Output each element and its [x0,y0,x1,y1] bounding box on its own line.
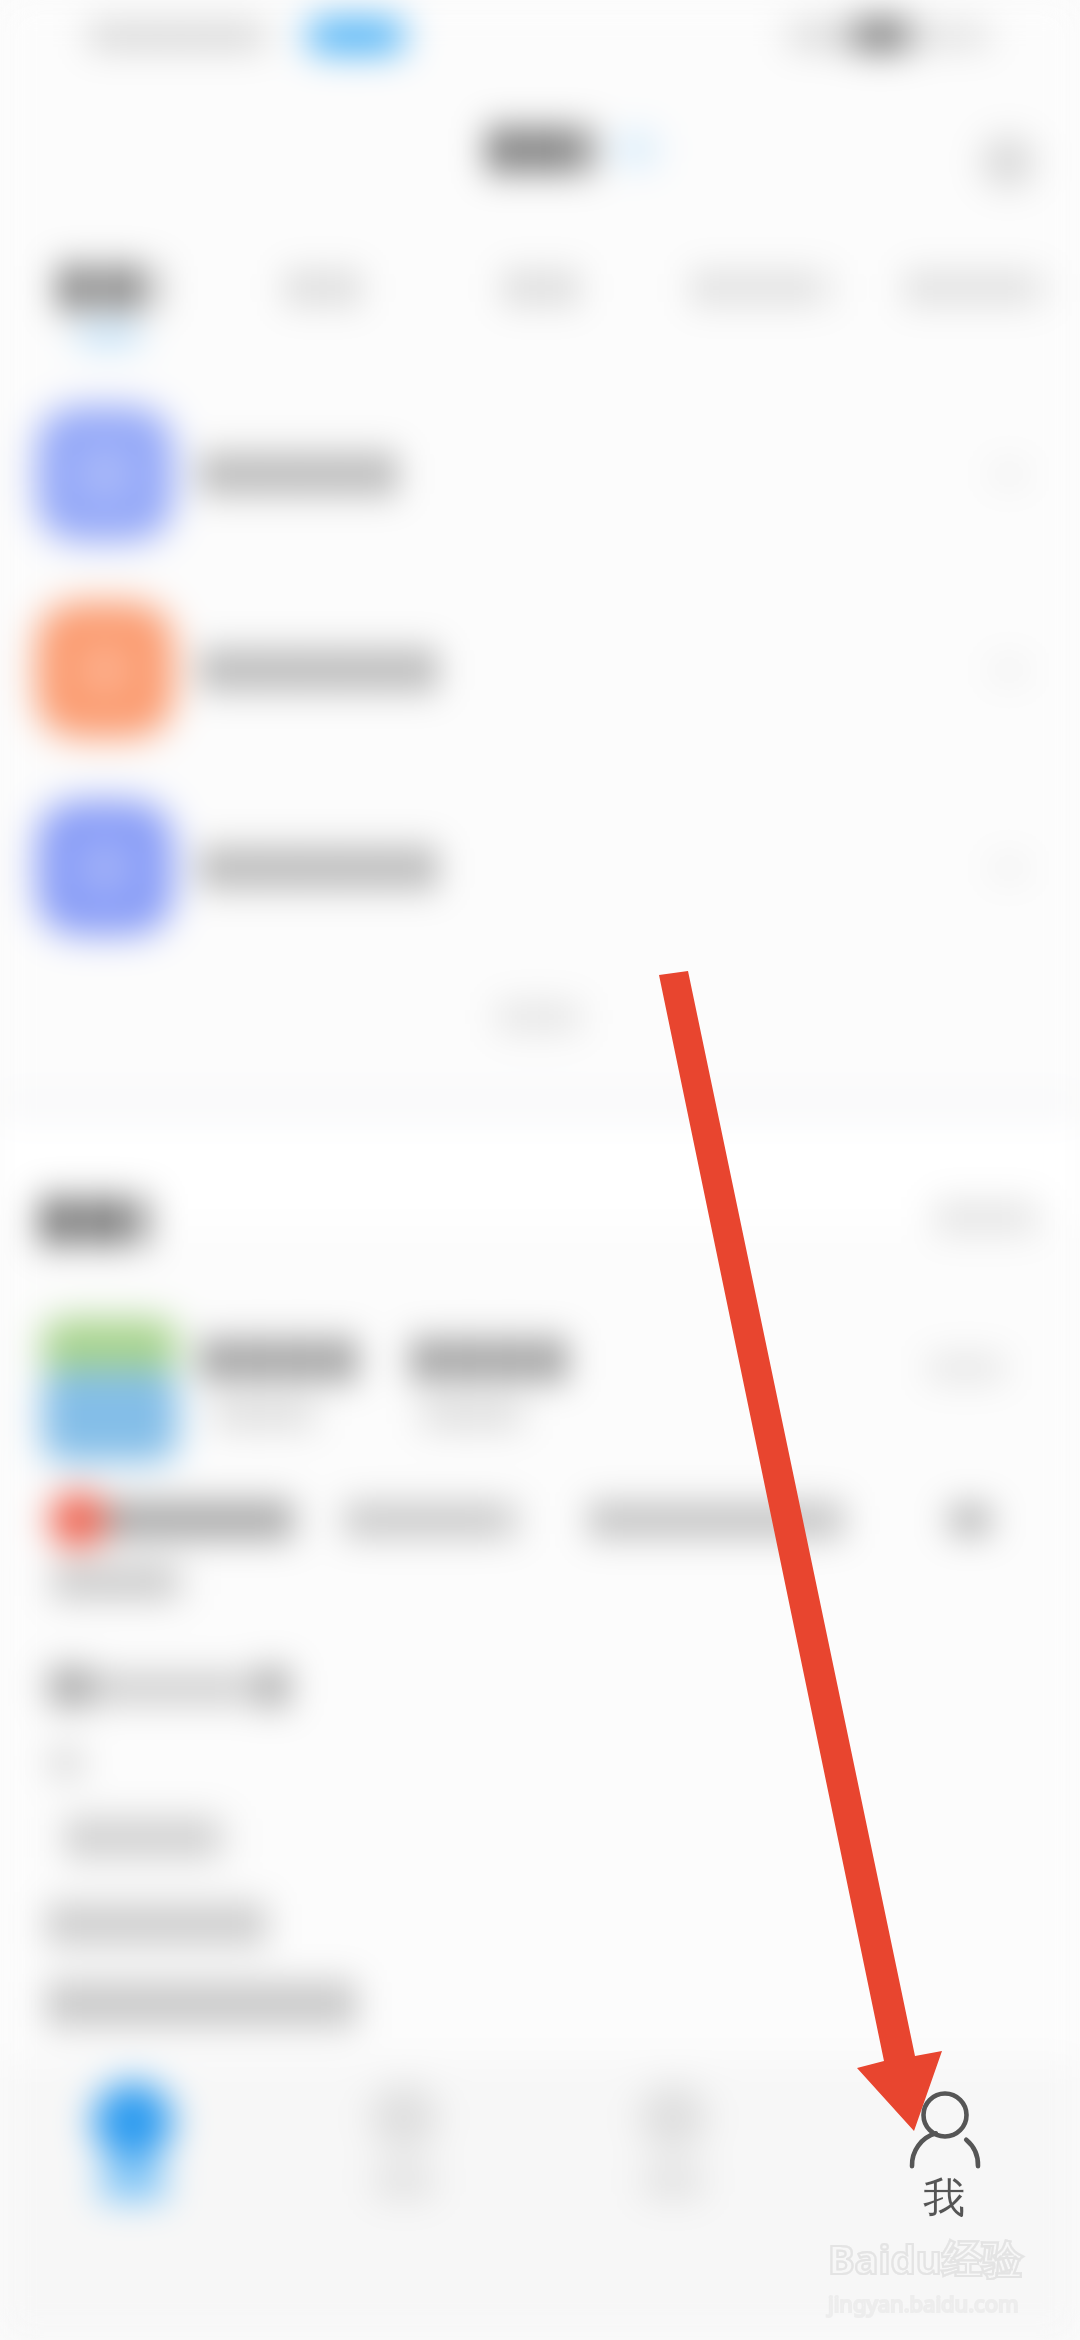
button[interactable]: 状态栏图标 [852,18,1032,80]
button[interactable]: 视频 [640,240,860,350]
button[interactable]: 热点 [440,240,620,350]
button[interactable]: 更多选项 [960,112,1060,212]
button[interactable]: 关注 [230,240,410,350]
button[interactable]: 资讯列表项 [20,1482,1060,1614]
button[interactable]: 全部 [900,1180,1060,1260]
button[interactable]: 消息 [540,2070,810,2230]
staticText: Baidu经验 [828,2231,1022,2286]
button[interactable]: 服务二 [20,603,1060,763]
staticText: 我 [923,2172,965,2225]
button[interactable]: 推荐 [20,240,200,350]
button[interactable]: 查看更多 [430,980,650,1056]
button[interactable]: 推荐卡片 [20,1288,1060,1480]
staticText: jingyan.baidu.com [828,2288,1019,2318]
button[interactable]: 我 [810,2070,1080,2230]
button[interactable]: 首页 [0,2070,270,2230]
button[interactable]: 服务三 [20,800,1060,960]
button[interactable]: 服务一 [20,406,1060,566]
button[interactable]: 图片 [860,240,1080,350]
button[interactable]: 服务 [270,2070,540,2230]
